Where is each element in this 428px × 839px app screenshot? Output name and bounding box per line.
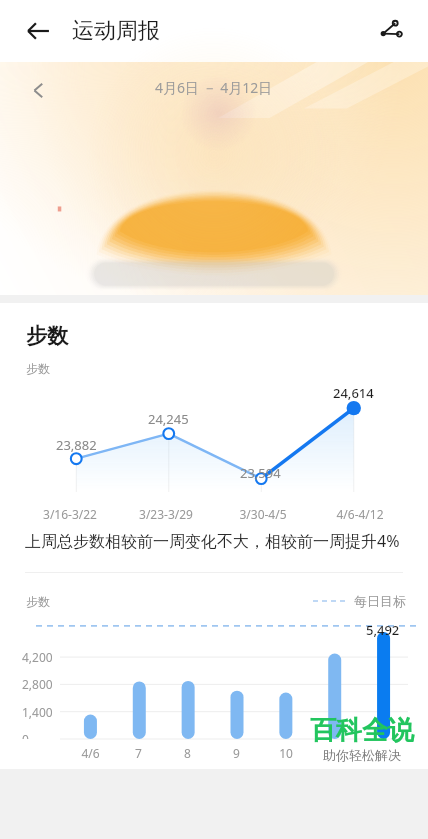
staticText: 23,594 — [240, 464, 281, 482]
staticText: 8 — [184, 745, 191, 761]
staticText: 助你轻松解决 — [323, 747, 401, 763]
staticText: 3/23-3/29 — [139, 506, 193, 522]
staticText: 0 — [22, 731, 29, 739]
button[interactable]: Share — [366, 7, 414, 55]
staticText: 10 — [279, 745, 293, 761]
staticText: 4,200 — [22, 649, 53, 665]
staticText: 9 — [233, 745, 240, 761]
staticText: 每日目标 — [354, 593, 406, 609]
button[interactable]: Previous week — [18, 70, 58, 110]
staticText: 4月6日 － 4月12日 — [155, 78, 273, 97]
staticText: 7 — [135, 745, 142, 761]
staticText: 23,882 — [56, 436, 97, 454]
staticText: 2,800 — [22, 676, 53, 692]
staticText: 5,492 — [366, 621, 400, 639]
staticText: 步数 — [26, 323, 68, 349]
button[interactable]: Back — [14, 7, 62, 55]
staticText: 运动周报 — [72, 17, 160, 45]
staticText: 24,614 — [333, 384, 374, 402]
staticText: 上周总步数相较前一周变化不大，相较前一周提升4% — [25, 530, 400, 552]
staticText: 1,400 — [22, 704, 53, 720]
staticText: 3/16-3/22 — [43, 506, 97, 522]
staticText: 百科全说 — [310, 714, 414, 747]
staticText: 步数 — [26, 361, 50, 376]
staticText: 步数 — [26, 594, 50, 609]
staticText: 4/6-4/12 — [336, 506, 384, 522]
staticText: 4/6 — [81, 745, 100, 761]
staticText: 3/30-4/5 — [239, 506, 287, 522]
staticText: 24,245 — [148, 410, 189, 428]
